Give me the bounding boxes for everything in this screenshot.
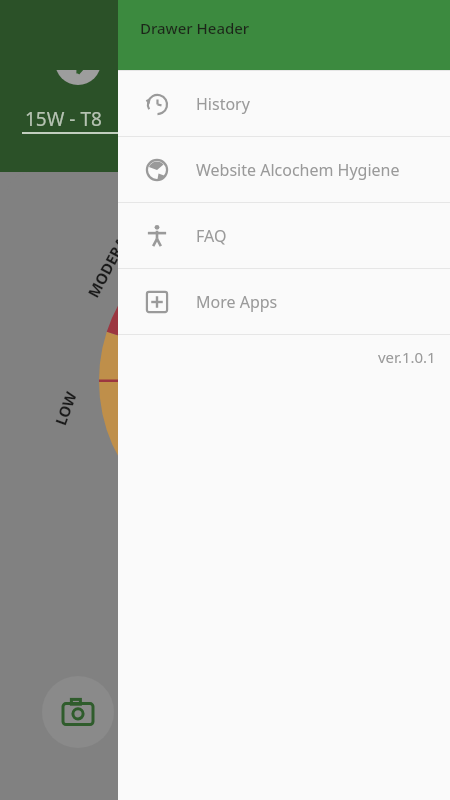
staticText: History — [196, 93, 250, 115]
staticText: FAQ — [196, 225, 227, 247]
button[interactable]: More Apps — [118, 269, 450, 334]
staticText: 15W - T8 — [25, 106, 102, 132]
staticText: MODERATE — [83, 219, 139, 301]
staticText: U — [106, 36, 126, 71]
staticText: ver.1.0.1 — [378, 347, 436, 367]
button[interactable]: Take photo — [42, 676, 114, 748]
staticText: Website Alcochem Hygiene — [196, 159, 400, 181]
staticText: Drawer Header — [140, 18, 250, 38]
staticText: LOW — [50, 388, 81, 428]
button[interactable]: FAQ — [118, 203, 450, 268]
button[interactable]: History — [118, 71, 450, 136]
staticText: More Apps — [196, 291, 278, 313]
button[interactable]: Website Alcochem Hygiene — [118, 137, 450, 202]
